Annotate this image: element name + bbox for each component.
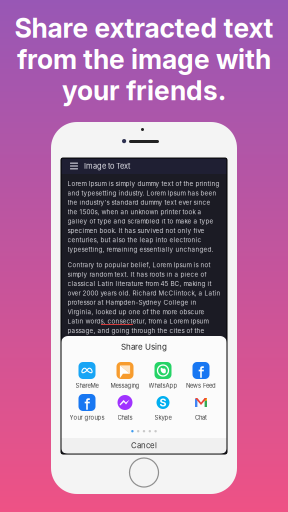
staticText: ShareMe (75, 382, 98, 389)
button[interactable]: Menu (64, 158, 84, 174)
button[interactable]: Messaging (106, 362, 144, 389)
button[interactable]: Cancel (61, 438, 227, 453)
staticText: Chat (195, 414, 207, 421)
staticText: Contrary to popular belief, Lorem Ipsum … (67, 261, 220, 353)
staticText: from the image with (17, 43, 271, 76)
staticText: Messaging (110, 382, 139, 389)
button[interactable]: Chat (182, 394, 220, 421)
button[interactable]: Chats (106, 394, 144, 421)
staticText: Share extracted text (14, 12, 273, 44)
staticText: Skype (154, 414, 171, 421)
staticText: Lorem Ipsum is simply dummy text of the … (67, 180, 219, 253)
staticText: Share Using (121, 342, 167, 352)
button[interactable]: Your groups (68, 394, 106, 421)
button[interactable]: News Feed (182, 362, 220, 389)
staticText: Your groups (69, 414, 104, 421)
staticText: Cancel (131, 441, 157, 450)
button[interactable]: ShareMe (68, 362, 106, 389)
staticText: Image to Text (84, 161, 130, 170)
button[interactable]: WhatsApp (144, 362, 182, 389)
staticText: your friends. (62, 74, 226, 107)
button[interactable]: S (144, 394, 182, 421)
staticText: S (159, 396, 166, 409)
staticText: News Feed (186, 382, 216, 389)
staticText: Chats (117, 414, 132, 421)
staticText: WhatsApp (148, 382, 177, 389)
